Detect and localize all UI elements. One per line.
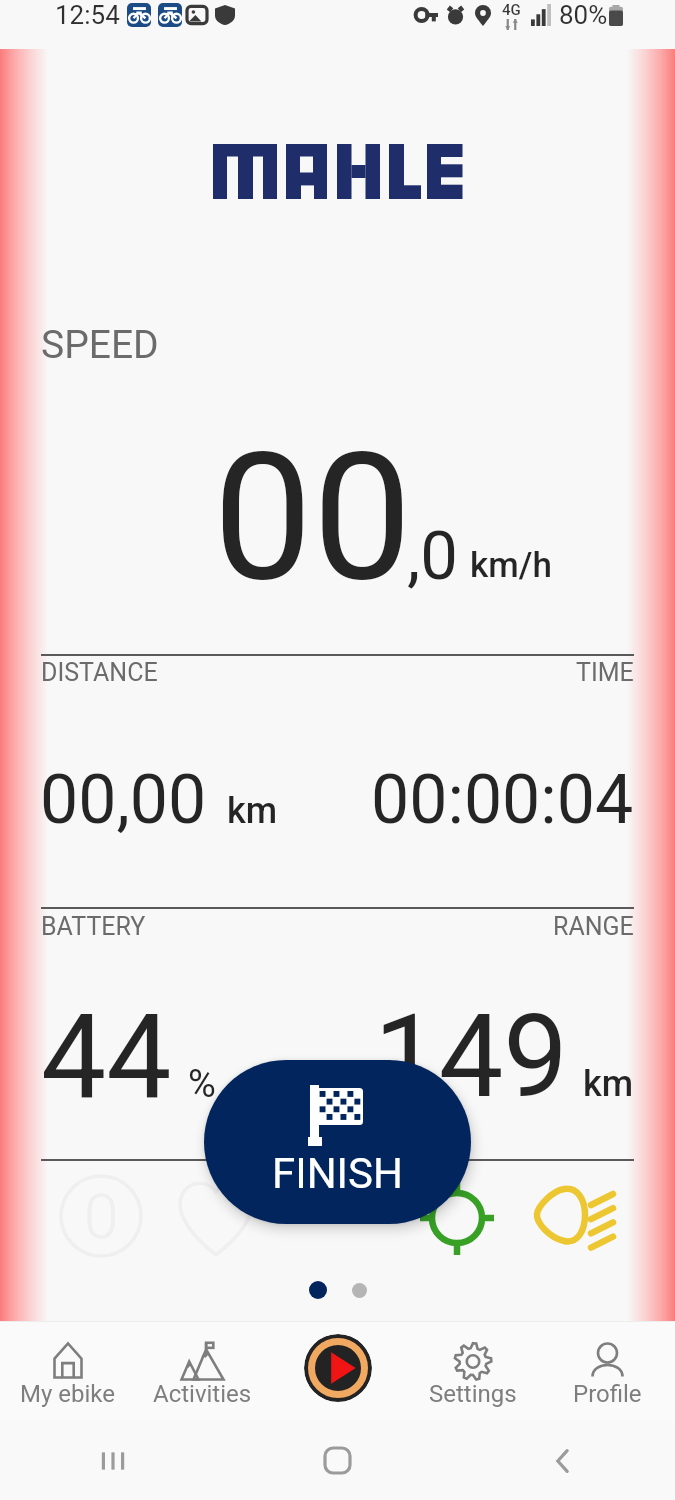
staticText: RANGE <box>553 912 634 941</box>
staticText: ,0 <box>407 517 458 596</box>
staticText: km <box>227 790 278 832</box>
other: Back <box>550 1448 576 1474</box>
button[interactable]: Profile <box>540 1321 675 1421</box>
button[interactable]: Assist level <box>59 1174 143 1258</box>
staticText: Activities <box>153 1380 252 1408</box>
staticText: BATTERY <box>41 912 146 941</box>
staticText: 149 <box>374 989 568 1124</box>
button[interactable]: Start ride <box>304 1334 372 1402</box>
staticText: FINISH <box>272 1149 403 1198</box>
staticText: 12:54 <box>55 0 120 30</box>
button[interactable]: Settings <box>405 1321 540 1421</box>
other: Recents <box>101 1449 125 1473</box>
staticText: 4G <box>502 1 521 19</box>
staticText: Profile <box>573 1380 642 1408</box>
staticText: TIME <box>576 658 634 687</box>
staticText: 80% <box>559 0 608 30</box>
other: Home <box>325 1448 350 1473</box>
staticText: 00,00 <box>40 760 207 840</box>
staticText: 44 <box>41 989 172 1125</box>
button[interactable]: Activities <box>135 1321 270 1421</box>
staticText: My ebike <box>20 1380 115 1408</box>
other: MAHLE <box>213 144 462 199</box>
staticText: 0 <box>84 1180 119 1253</box>
staticText: 00:00:04 <box>371 760 634 840</box>
button[interactable]: FINISH <box>204 1060 471 1224</box>
staticText: % <box>188 1062 216 1107</box>
staticText: 00 <box>213 414 412 621</box>
staticText: km/h <box>470 545 552 586</box>
staticText: SPEED <box>41 322 159 368</box>
staticText: DISTANCE <box>41 658 158 687</box>
button[interactable]: Lights <box>534 1186 616 1248</box>
button[interactable]: GPS <box>414 1175 500 1261</box>
button[interactable]: Heart rate <box>177 1177 255 1259</box>
staticText: km <box>583 1063 634 1105</box>
button[interactable]: My ebike <box>0 1321 135 1421</box>
staticText: Settings <box>429 1380 517 1408</box>
